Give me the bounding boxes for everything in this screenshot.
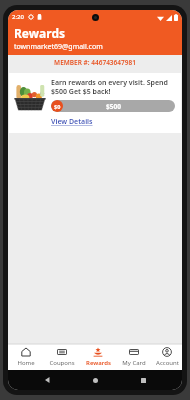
staticText: $0 [54,103,61,110]
staticText: $500 [106,102,121,111]
button[interactable]: Account [152,344,182,370]
button[interactable]: Coupons [44,344,80,370]
staticText: Rewards [86,359,111,367]
button[interactable]: Rewards [80,344,116,370]
staticText: Rewards [14,25,65,41]
button[interactable]: My Card [116,344,152,370]
staticText: Home [17,359,35,367]
staticText: Coupons [49,359,75,367]
staticText: Account [156,359,179,367]
staticText: Earn rewards on every visit. Spend $500 … [51,78,175,96]
button[interactable]: Home [8,344,44,370]
button[interactable]: View Details [51,117,93,127]
button[interactable]: Back [40,372,56,388]
button[interactable]: Earn rewards on every visit. Spend $500 … [9,73,181,133]
staticText: townmarket69@gmail.com [14,42,103,52]
staticText: 2:20 [12,13,24,21]
staticText: My Card [122,359,146,367]
button[interactable]: Home [87,372,103,388]
button[interactable]: Recent apps [135,372,151,388]
staticText: MEMBER #: 446743647981 [54,58,136,67]
